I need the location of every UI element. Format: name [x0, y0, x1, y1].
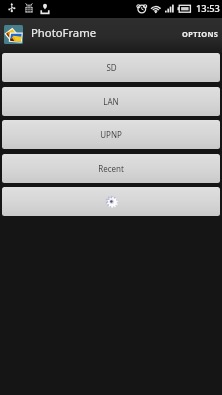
button[interactable]: OPTIONS	[172, 18, 222, 53]
staticText: UPNP	[100, 129, 122, 140]
staticText: Recent	[98, 163, 124, 174]
staticText: LAN	[103, 96, 119, 107]
button[interactable]: UPNP	[2, 120, 220, 149]
button[interactable]: Settings	[2, 187, 220, 216]
staticText: 13:53	[196, 2, 220, 15]
button[interactable]: LAN	[2, 87, 220, 116]
staticText: SD	[106, 62, 117, 73]
button[interactable]: Recent	[2, 154, 220, 183]
other: Settings	[105, 195, 118, 208]
button[interactable]: SD	[2, 53, 220, 82]
staticText: PhotoFrame	[31, 25, 97, 40]
staticText: OPTIONS	[182, 29, 219, 39]
